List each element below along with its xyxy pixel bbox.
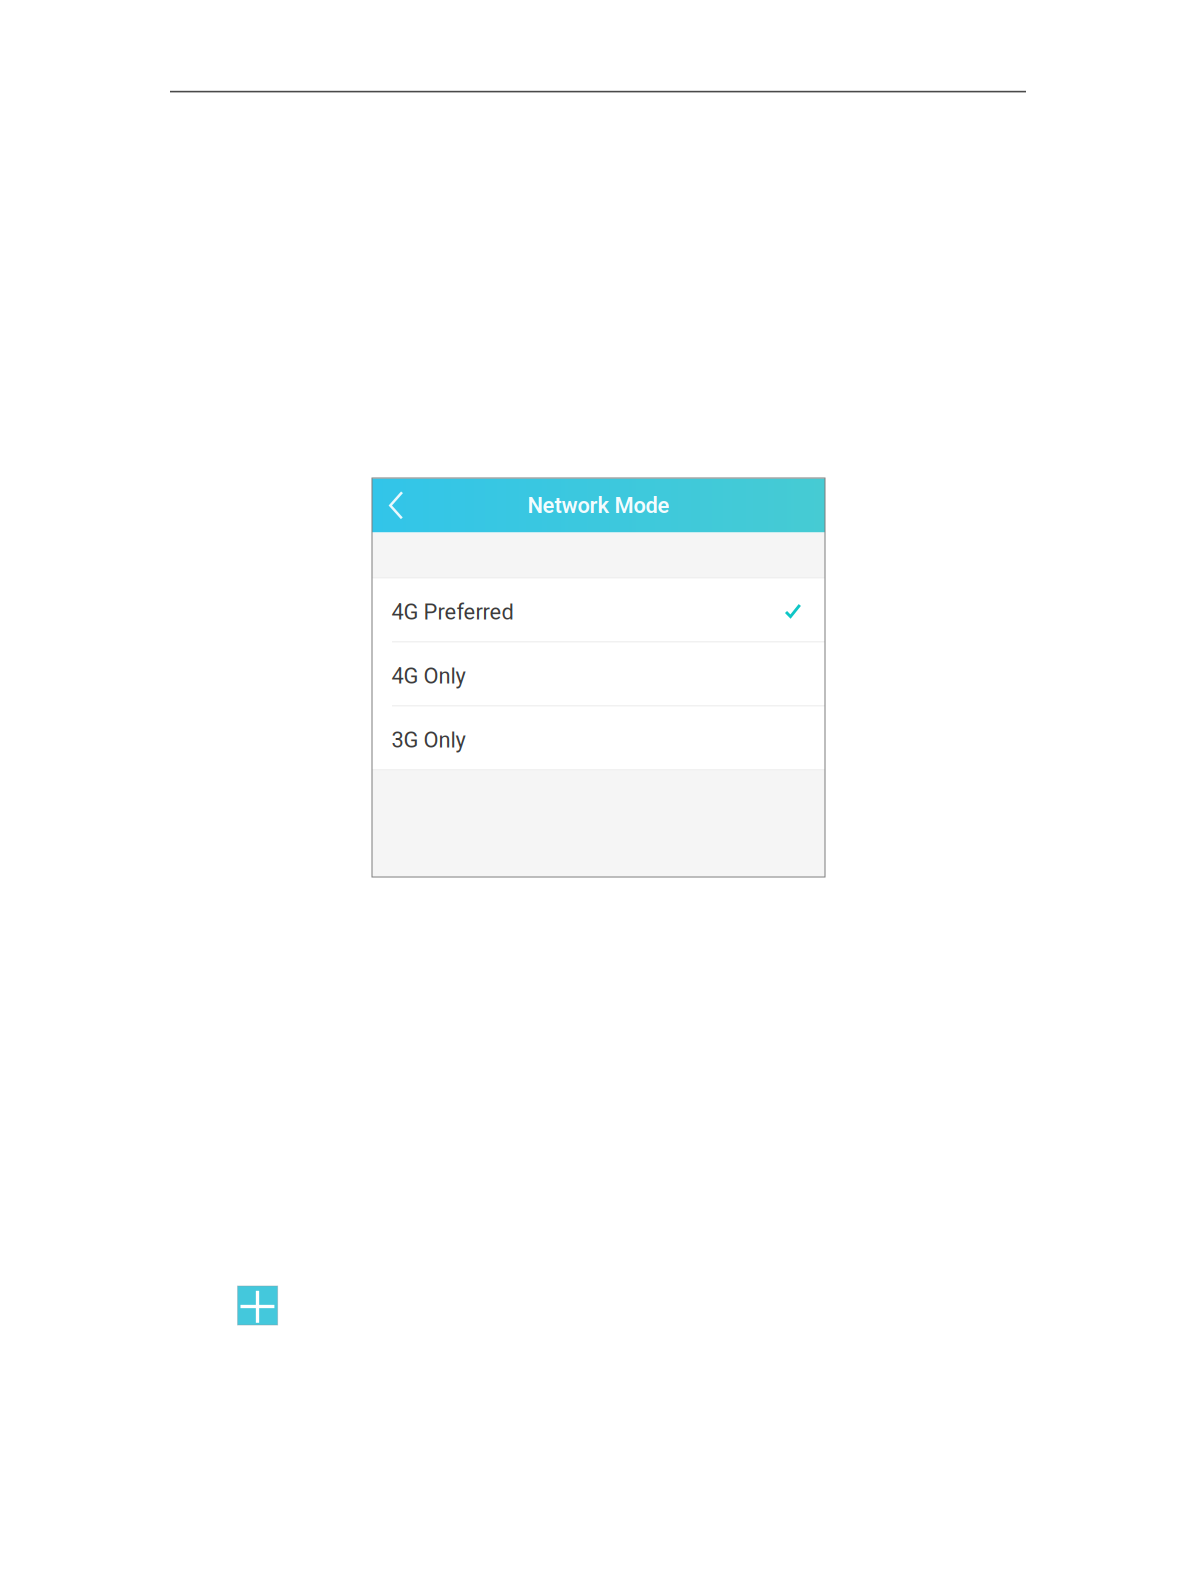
button[interactable]: Back [372, 478, 432, 532]
staticText: 4G Preferred [391, 599, 513, 625]
button[interactable]: 4G Preferred [372, 578, 825, 641]
button[interactable]: 3G Only [372, 706, 825, 769]
button[interactable]: Add [238, 1286, 278, 1325]
button[interactable]: 4G Only [372, 642, 825, 705]
staticText: Network Mode [527, 493, 669, 518]
staticText: 3G Only [391, 727, 465, 753]
staticText: 4G Only [391, 663, 465, 689]
